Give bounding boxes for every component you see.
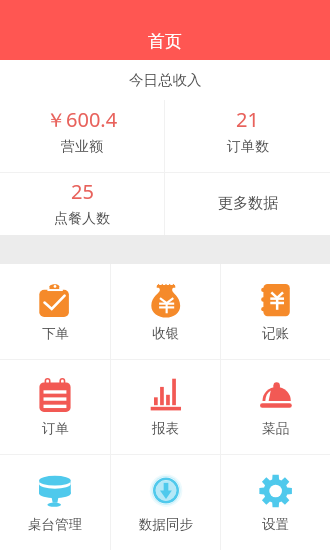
button[interactable]: 数据同步 [111,455,220,550]
staticText: 设置 [262,516,289,533]
button[interactable]: 21 [165,100,330,172]
button[interactable]: 更多数据 [165,173,330,235]
button[interactable]: 收银 [111,264,220,359]
button[interactable]: 首页 [0,0,330,60]
button[interactable]: 桌台管理 [0,455,110,550]
staticText: 订单数 [227,138,269,156]
staticText: 报表 [152,420,179,437]
staticText: 收银 [152,325,179,342]
button[interactable]: 订单 [0,360,110,454]
button[interactable]: ￥600.4 [0,100,164,172]
staticText: 记账 [262,325,289,342]
button[interactable]: 菜品 [221,360,330,454]
staticText: 下单 [42,325,69,342]
staticText: ￥600.4 [46,106,118,133]
staticText: 更多数据 [218,194,278,213]
staticText: 今日总收入 [129,71,202,89]
staticText: 首页 [148,31,182,52]
button[interactable]: 记账 [221,264,330,359]
staticText: 数据同步 [139,516,193,533]
staticText: 菜品 [262,420,289,437]
staticText: 营业额 [61,138,103,156]
staticText: 订单 [42,420,69,437]
button[interactable]: 报表 [111,360,220,454]
button[interactable]: 25 [0,173,164,235]
staticText: 桌台管理 [28,516,82,533]
staticText: 点餐人数 [54,210,110,228]
staticText: 21 [236,106,259,133]
button[interactable]: 设置 [221,455,330,550]
button[interactable]: 下单 [0,264,110,359]
staticText: 25 [71,178,94,205]
